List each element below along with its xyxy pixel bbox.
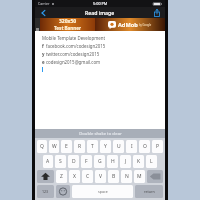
button[interactable]: P (152, 140, 163, 153)
staticText: G (98, 158, 102, 165)
staticText: D (72, 158, 76, 165)
staticText: F (85, 158, 88, 165)
button[interactable]: O (139, 140, 150, 153)
button[interactable]: V (95, 170, 106, 183)
button[interactable]: G (94, 155, 105, 168)
staticText: N (125, 173, 129, 180)
button[interactable]: T (87, 140, 98, 153)
button[interactable]: X (69, 170, 80, 183)
button[interactable]: C (82, 170, 93, 183)
staticText: facebook.com/codesign2015 (46, 43, 106, 49)
staticText: P (156, 143, 160, 150)
button[interactable]: Share (151, 7, 163, 18)
button[interactable]: Mobile Template Development (35, 31, 165, 129)
staticText: E (65, 143, 68, 150)
button[interactable]: F (81, 155, 92, 168)
staticText: L (150, 158, 153, 165)
button[interactable]: J (120, 155, 131, 168)
staticText: Y (104, 143, 107, 150)
button[interactable]: Y (100, 140, 111, 153)
staticText: C (86, 173, 90, 180)
staticText: B (112, 173, 116, 180)
button[interactable]: Double shake to clear (35, 129, 165, 138)
staticText: Q (40, 143, 44, 150)
staticText: by Google (139, 23, 152, 27)
staticText: Read image (85, 9, 115, 16)
staticText: W (52, 143, 57, 150)
button[interactable]: U (113, 140, 124, 153)
button[interactable]: L (146, 155, 157, 168)
staticText: Z (60, 173, 63, 180)
staticText: twitter.com/codesign2015 (46, 51, 100, 57)
button[interactable]: W (49, 140, 59, 153)
staticText: A (46, 158, 50, 165)
button[interactable]: K (133, 155, 144, 168)
button[interactable]: Delete (147, 170, 163, 183)
staticText: H (111, 158, 115, 165)
button[interactable]: Back (37, 7, 49, 18)
button[interactable]: I (126, 140, 137, 153)
button[interactable]: E (61, 140, 72, 153)
staticText: S (59, 158, 62, 165)
button[interactable]: A (43, 155, 53, 168)
button[interactable]: N (121, 170, 132, 183)
staticText: e (42, 59, 45, 65)
button[interactable]: Emoji (56, 185, 70, 198)
staticText: codesign2015@gmail.com (46, 59, 101, 65)
button[interactable]: D (68, 155, 79, 168)
staticText: Test Banner (54, 25, 82, 31)
button[interactable]: Q (37, 140, 47, 153)
staticText: 123 (42, 189, 49, 194)
staticText: return (144, 189, 155, 194)
staticText: O (143, 143, 147, 150)
staticText: AdMob (118, 21, 138, 29)
button[interactable]: M (134, 170, 145, 183)
staticText: Carrier (38, 1, 50, 6)
button[interactable]: 123 (37, 185, 54, 198)
staticText: X (73, 173, 76, 180)
staticText: V (99, 173, 103, 180)
staticText: space (98, 189, 108, 194)
staticText: f (42, 43, 45, 49)
button[interactable]: space (72, 185, 133, 198)
staticText: J (125, 158, 127, 165)
staticText: Double shake to clear (79, 131, 122, 137)
staticText: I (131, 143, 133, 150)
staticText: R (78, 143, 82, 150)
button[interactable]: Shift (37, 170, 54, 183)
staticText: M (137, 173, 142, 180)
button[interactable]: H (107, 155, 118, 168)
staticText: 320x50 (59, 18, 77, 25)
staticText: K (137, 158, 141, 165)
button[interactable]: B (108, 170, 119, 183)
button[interactable]: S (55, 155, 66, 168)
button[interactable]: R (74, 140, 85, 153)
button[interactable]: return (135, 185, 163, 198)
staticText: y (42, 51, 45, 57)
staticText: 5:00 PM (93, 1, 108, 6)
staticText: U (117, 143, 121, 150)
staticText: T (91, 143, 94, 150)
button[interactable]: Z (56, 170, 67, 183)
staticText: Mobile Template Development (42, 35, 106, 41)
button[interactable]: Advertisement banner (35, 18, 165, 31)
